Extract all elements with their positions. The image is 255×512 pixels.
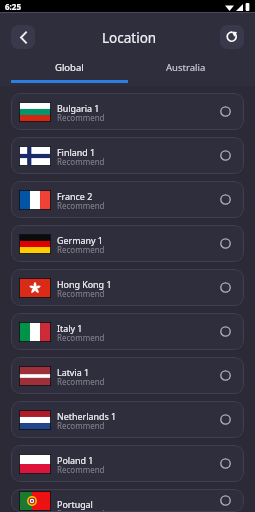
button[interactable]: Poland 1 <box>11 445 244 482</box>
staticText: Recommend <box>57 332 105 343</box>
staticText: Finland 1 <box>57 146 96 158</box>
staticText: Germany 1 <box>57 234 103 246</box>
button[interactable]: Germany 1 <box>11 225 244 262</box>
staticText: Location <box>102 29 157 47</box>
staticText: Recommend <box>57 376 105 387</box>
button[interactable]: Latvia 1 <box>11 357 244 394</box>
staticText: Recommend <box>57 200 105 211</box>
staticText: Recommend <box>57 244 105 255</box>
staticText: Recommend <box>57 156 105 167</box>
button[interactable]: Italy 1 <box>11 313 244 350</box>
staticText: Recommend <box>57 112 105 123</box>
button[interactable]: Netherlands 1 <box>11 401 244 438</box>
button[interactable]: Refresh <box>220 25 244 49</box>
staticText: Poland 1 <box>57 454 94 466</box>
staticText: France 2 <box>57 190 93 202</box>
button[interactable]: Global <box>11 57 127 77</box>
staticText: 6:25 <box>5 1 21 12</box>
staticText: Recommend <box>57 508 105 512</box>
button[interactable]: Portugal <box>11 489 244 512</box>
staticText: Italy 1 <box>57 322 83 334</box>
button[interactable]: Hong Kong 1 <box>11 269 244 306</box>
staticText: Australia <box>166 61 206 74</box>
staticText: Global <box>55 61 84 74</box>
staticText: Recommend <box>57 288 105 299</box>
staticText: Bulgaria 1 <box>57 102 100 114</box>
button[interactable]: Bulgaria 1 <box>11 93 244 130</box>
staticText: Recommend <box>57 420 105 431</box>
staticText: Latvia 1 <box>57 366 90 378</box>
staticText: Netherlands 1 <box>57 410 117 422</box>
staticText: Recommend <box>57 464 105 475</box>
staticText: Portugal <box>57 498 93 510</box>
button[interactable]: Back <box>11 25 35 49</box>
button[interactable]: Finland 1 <box>11 137 244 174</box>
button[interactable]: France 2 <box>11 181 244 218</box>
button[interactable]: Australia <box>127 57 244 77</box>
staticText: Hong Kong 1 <box>57 278 112 290</box>
